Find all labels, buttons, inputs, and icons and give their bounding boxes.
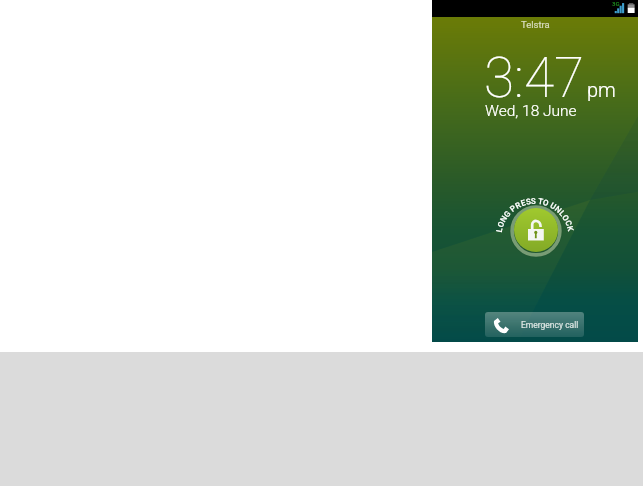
button[interactable]: Long press to unlock [490, 184, 582, 276]
staticText: 3G [612, 0, 620, 7]
staticText: 3:47 [484, 46, 585, 110]
staticText: Telstra [521, 19, 550, 30]
staticText: Wed, 18 June [485, 102, 577, 120]
button[interactable]: Emergency call [485, 312, 584, 337]
staticText: Emergency call [521, 320, 579, 330]
staticText: pm [587, 78, 616, 101]
